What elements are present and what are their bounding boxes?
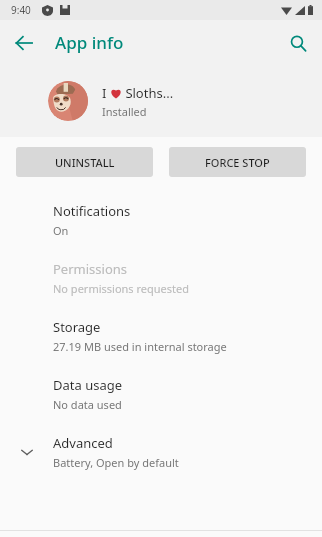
- staticText: Data usage: [53, 376, 123, 394]
- staticText: Installed: [102, 104, 147, 119]
- staticText: No data used: [53, 397, 122, 412]
- staticText: 27.19 MB used in internal storage: [53, 339, 227, 354]
- button[interactable]: Storage: [0, 307, 322, 365]
- button[interactable]: Back: [6, 25, 42, 61]
- staticText: Notifications: [53, 202, 131, 220]
- staticText: Battery, Open by default: [53, 455, 179, 470]
- button[interactable]: Search: [280, 25, 316, 61]
- button[interactable]: Advanced: [0, 423, 322, 481]
- staticText: App info: [55, 31, 124, 54]
- button[interactable]: FORCE STOP: [169, 147, 306, 177]
- button[interactable]: Data usage: [0, 365, 322, 423]
- staticText: Storage: [53, 318, 101, 336]
- staticText: I: [102, 84, 110, 102]
- staticText: Permissions: [53, 260, 128, 278]
- staticText: UNINSTALL: [55, 155, 115, 170]
- button[interactable]: UNINSTALL: [16, 147, 153, 177]
- staticText: Sloths...: [122, 84, 174, 102]
- staticText: No permissions requested: [53, 281, 189, 296]
- staticText: On: [53, 223, 69, 238]
- button[interactable]: Permissions: [0, 249, 322, 307]
- staticText: Advanced: [53, 434, 113, 452]
- staticText: 9:40: [11, 3, 31, 17]
- staticText: FORCE STOP: [205, 155, 270, 170]
- button[interactable]: Notifications: [0, 191, 322, 249]
